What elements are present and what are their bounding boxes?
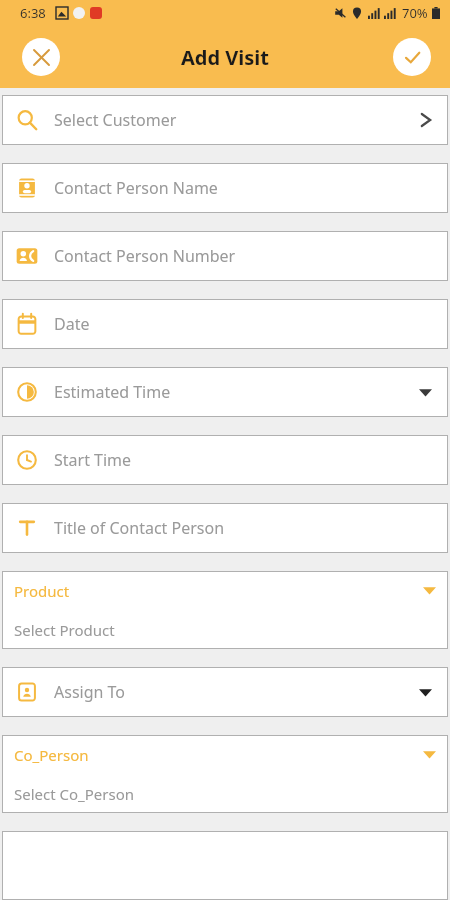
button[interactable]: Co_Person [2, 735, 448, 813]
staticText: Contact Person Number [54, 245, 432, 267]
staticText: Add Visit [181, 44, 269, 71]
staticText: Start Time [54, 449, 432, 471]
staticText: Product [14, 581, 423, 601]
button[interactable]: Product [2, 571, 448, 649]
button[interactable]: Estimated Time [2, 367, 448, 417]
staticText: Select Co_Person [14, 784, 135, 804]
button[interactable]: Contact Person Number [2, 231, 448, 281]
button[interactable]: Title of Contact Person [2, 503, 448, 553]
staticText: Date [54, 313, 432, 335]
button[interactable] [2, 831, 448, 900]
staticText: Select Product [14, 620, 115, 640]
button[interactable]: Close [22, 38, 60, 76]
button[interactable]: Start Time [2, 435, 448, 485]
button[interactable]: Date [2, 299, 448, 349]
staticText: Select Customer [54, 109, 420, 131]
staticText: Contact Person Name [54, 177, 432, 199]
button[interactable]: Assign To [2, 667, 448, 717]
staticText: Estimated Time [54, 381, 419, 403]
staticText: 6:38 [20, 4, 46, 22]
button[interactable]: Save [393, 38, 431, 76]
staticText: Co_Person [14, 745, 423, 765]
staticText: Assign To [54, 681, 419, 703]
staticText: 70% [402, 4, 428, 22]
button[interactable]: Select Customer [2, 95, 448, 145]
staticText: Title of Contact Person [54, 517, 432, 539]
button[interactable]: Contact Person Name [2, 163, 448, 213]
